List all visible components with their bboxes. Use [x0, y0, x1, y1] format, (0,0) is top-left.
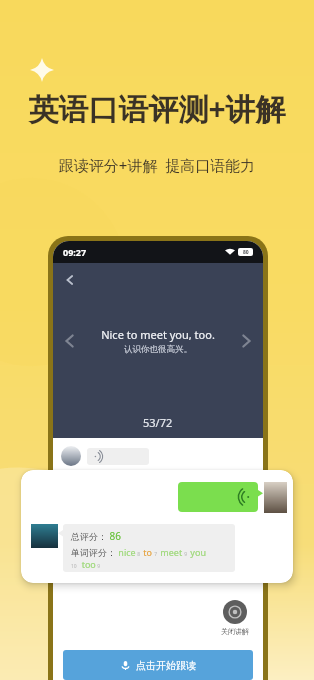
staticText: you — [188, 546, 206, 558]
staticText: Nice to meet you, too. — [101, 327, 215, 342]
staticText: 8 — [136, 551, 141, 558]
button[interactable]: Next — [235, 330, 257, 352]
staticText: 10 — [71, 563, 77, 570]
staticText: 总评分： — [71, 531, 107, 542]
button[interactable]: 点击开始跟读 — [63, 650, 253, 680]
staticText: nice — [116, 546, 136, 558]
button[interactable]: Play audio — [87, 448, 149, 465]
staticText: to — [141, 546, 153, 558]
staticText: 单词评分： — [71, 547, 116, 558]
button[interactable]: Previous — [59, 330, 81, 352]
staticText: 7 — [153, 551, 158, 558]
staticText: 86 — [107, 529, 122, 543]
staticText: 9 — [96, 563, 101, 570]
staticText: 80 — [243, 249, 249, 256]
staticText: too — [77, 558, 96, 570]
staticText: 53/72 — [143, 415, 173, 430]
button[interactable]: 关闭讲解 — [221, 600, 249, 636]
button[interactable]: Play my recording — [178, 482, 258, 512]
button[interactable]: Back — [61, 271, 79, 289]
staticText: meet — [158, 546, 183, 558]
staticText: 9 — [183, 551, 188, 558]
staticText: 点击开始跟读 — [136, 659, 196, 672]
staticText: 认识你也很高兴。 — [124, 344, 192, 355]
staticText: 英语口语评测+讲解 — [0, 88, 314, 129]
staticText: 09:27 — [63, 246, 87, 258]
staticText: 跟读评分+讲解 提高口语能力 — [0, 155, 314, 175]
other: 关闭讲解 — [223, 600, 247, 624]
staticText: 关闭讲解 — [221, 627, 249, 636]
